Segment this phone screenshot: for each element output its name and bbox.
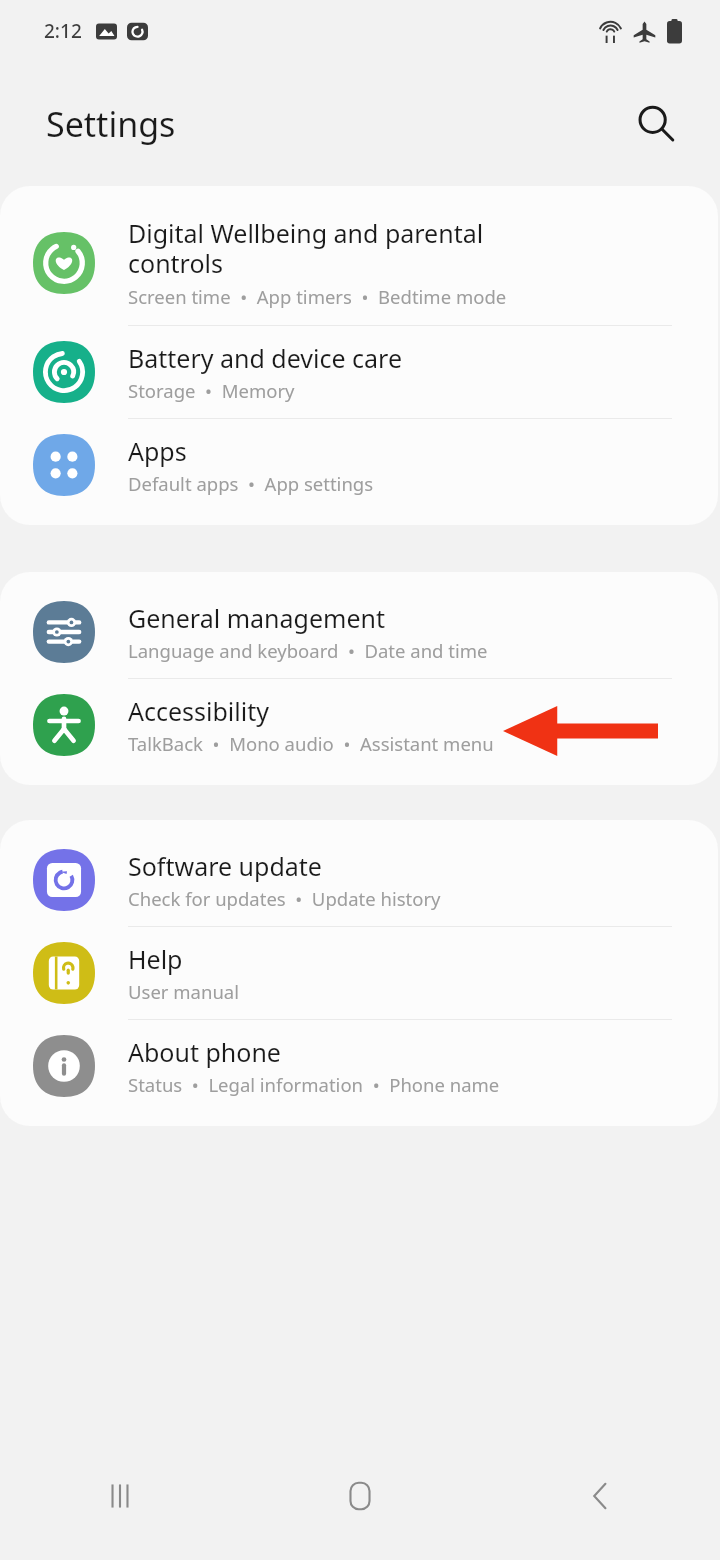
staticText: TalkBack • Mono audio • Assistant menu <box>128 731 494 756</box>
staticText: Digital Wellbeing and parental controls <box>128 216 484 281</box>
staticText: User manual <box>128 979 239 1004</box>
button[interactable]: Back <box>480 1432 720 1560</box>
button[interactable]: Search <box>620 88 692 160</box>
staticText: About phone <box>128 1035 281 1069</box>
button[interactable]: Software update <box>0 834 718 926</box>
button[interactable]: Accessibility <box>0 679 718 771</box>
button[interactable]: Battery and device care <box>0 326 718 418</box>
button[interactable]: Apps <box>0 419 718 511</box>
staticText: Help <box>128 942 183 976</box>
staticText: Screen time • App timers • Bedtime mode <box>128 284 507 309</box>
button[interactable]: Recent apps <box>0 1432 240 1560</box>
staticText: Software update <box>128 849 322 883</box>
button[interactable]: Digital Wellbeing and parental controls <box>0 200 718 325</box>
staticText: Language and keyboard • Date and time <box>128 638 488 663</box>
staticText: Apps <box>128 434 187 468</box>
staticText: Default apps • App settings <box>128 471 374 496</box>
button[interactable]: Help <box>0 927 718 1019</box>
staticText: Settings <box>46 101 176 147</box>
staticText: 2:12 <box>44 18 82 44</box>
button[interactable]: About phone <box>0 1020 718 1112</box>
staticText: Accessibility <box>128 694 269 728</box>
staticText: General management <box>128 601 385 635</box>
staticText: Check for updates • Update history <box>128 886 441 911</box>
button[interactable]: Home <box>240 1432 480 1560</box>
staticText: Battery and device care <box>128 341 403 375</box>
staticText: Status • Legal information • Phone name <box>128 1072 500 1097</box>
staticText: Storage • Memory <box>128 378 295 403</box>
button[interactable]: General management <box>0 586 718 678</box>
